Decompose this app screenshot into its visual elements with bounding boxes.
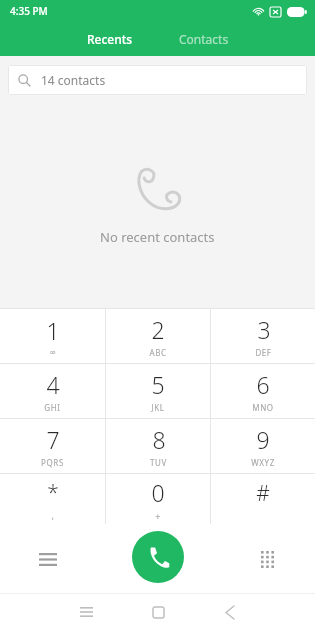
button[interactable]: # <box>211 474 315 524</box>
staticText: 4 <box>46 369 60 400</box>
button[interactable]: 8 <box>106 419 210 473</box>
staticText: 6 <box>256 369 270 400</box>
button[interactable]: 5 <box>106 364 210 418</box>
staticText: ∞ <box>49 348 57 357</box>
button[interactable]: Contacts <box>163 25 245 53</box>
staticText: 9 <box>256 424 270 455</box>
staticText: 1 <box>46 315 60 346</box>
staticText: 3 <box>257 314 271 345</box>
button[interactable]: 14 contacts <box>8 65 307 95</box>
staticText: # <box>256 479 270 508</box>
button[interactable]: 3 <box>211 309 315 363</box>
staticText: , <box>51 509 55 521</box>
staticText: + <box>155 510 161 522</box>
button[interactable]: 7 <box>0 419 105 473</box>
staticText: GHI <box>44 402 61 413</box>
staticText: Recents <box>87 31 133 47</box>
button[interactable]: 1 <box>0 309 105 363</box>
staticText: JKL <box>151 402 165 413</box>
staticText: 7 <box>46 424 60 455</box>
staticText: ABC <box>149 347 167 358</box>
staticText: * <box>47 478 59 507</box>
button[interactable]: Call <box>132 531 184 583</box>
button[interactable]: Recents <box>63 594 109 630</box>
button[interactable]: Menu <box>28 539 68 579</box>
staticText: WXYZ <box>251 457 275 468</box>
staticText: 5 <box>151 369 165 400</box>
staticText: No recent contacts <box>100 228 215 246</box>
staticText: 4:35 PM <box>10 4 48 18</box>
button[interactable]: 4 <box>0 364 105 418</box>
button[interactable]: * <box>0 474 105 524</box>
staticText: PQRS <box>41 457 64 468</box>
staticText: DEF <box>255 347 272 358</box>
staticText: 0 <box>151 477 165 508</box>
button[interactable]: 9 <box>211 419 315 473</box>
button[interactable]: 0 <box>106 474 210 524</box>
button[interactable]: Back <box>207 594 253 630</box>
staticText: 14 contacts <box>41 72 106 88</box>
button[interactable]: 6 <box>211 364 315 418</box>
button[interactable]: Home <box>135 594 181 630</box>
staticText: MNO <box>252 402 274 413</box>
button[interactable]: Recents <box>71 25 149 53</box>
staticText: Contacts <box>179 31 229 47</box>
staticText: 2 <box>151 314 165 345</box>
staticText: 8 <box>152 424 166 455</box>
staticText: TUV <box>150 457 167 468</box>
button[interactable]: 2 <box>106 309 210 363</box>
button[interactable]: Dialpad <box>247 539 287 579</box>
